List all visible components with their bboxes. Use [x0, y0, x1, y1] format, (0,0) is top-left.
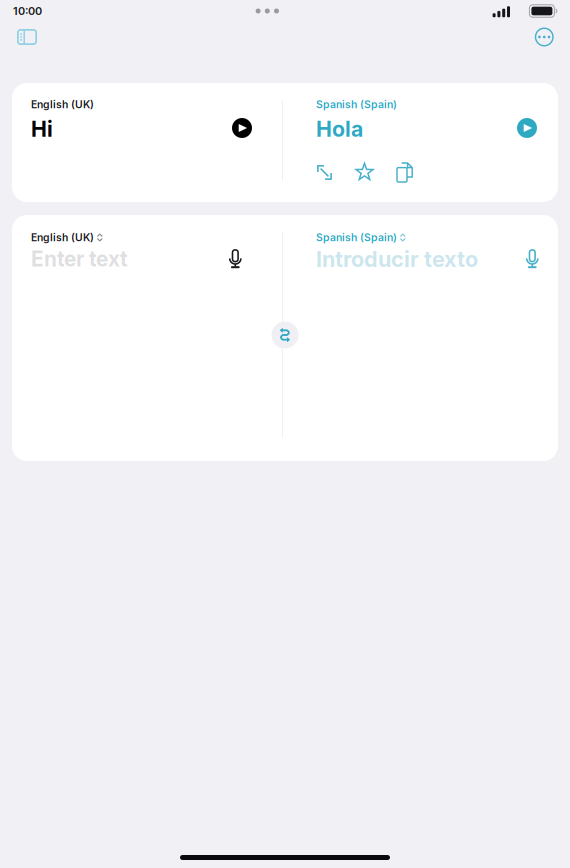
- staticText: 10:00: [13, 4, 42, 18]
- button[interactable]: Add to favourites: [350, 159, 379, 186]
- button[interactable]: Open in full screen: [311, 159, 338, 186]
- button[interactable]: Dictate Spanish (Spain): [521, 244, 544, 274]
- staticText: Spanish (Spain): [316, 98, 397, 111]
- staticText: English (UK): [31, 231, 94, 244]
- staticText: Hola: [316, 116, 363, 142]
- staticText: Enter text: [31, 246, 128, 272]
- staticText: Introducir texto: [316, 246, 478, 272]
- staticText: Hi: [31, 116, 53, 142]
- button[interactable]: Play Spanish (Spain): [511, 112, 543, 144]
- button[interactable]: Show sidebar: [11, 23, 43, 51]
- button[interactable]: Swap languages: [271, 321, 298, 348]
- button[interactable]: More options: [529, 22, 559, 52]
- button[interactable]: Dictate English (UK): [224, 244, 247, 274]
- staticText: English (UK): [31, 98, 94, 111]
- staticText: Spanish (Spain): [316, 231, 397, 244]
- button[interactable]: Play English (UK): [226, 112, 258, 144]
- button[interactable]: Copy translation: [391, 159, 418, 186]
